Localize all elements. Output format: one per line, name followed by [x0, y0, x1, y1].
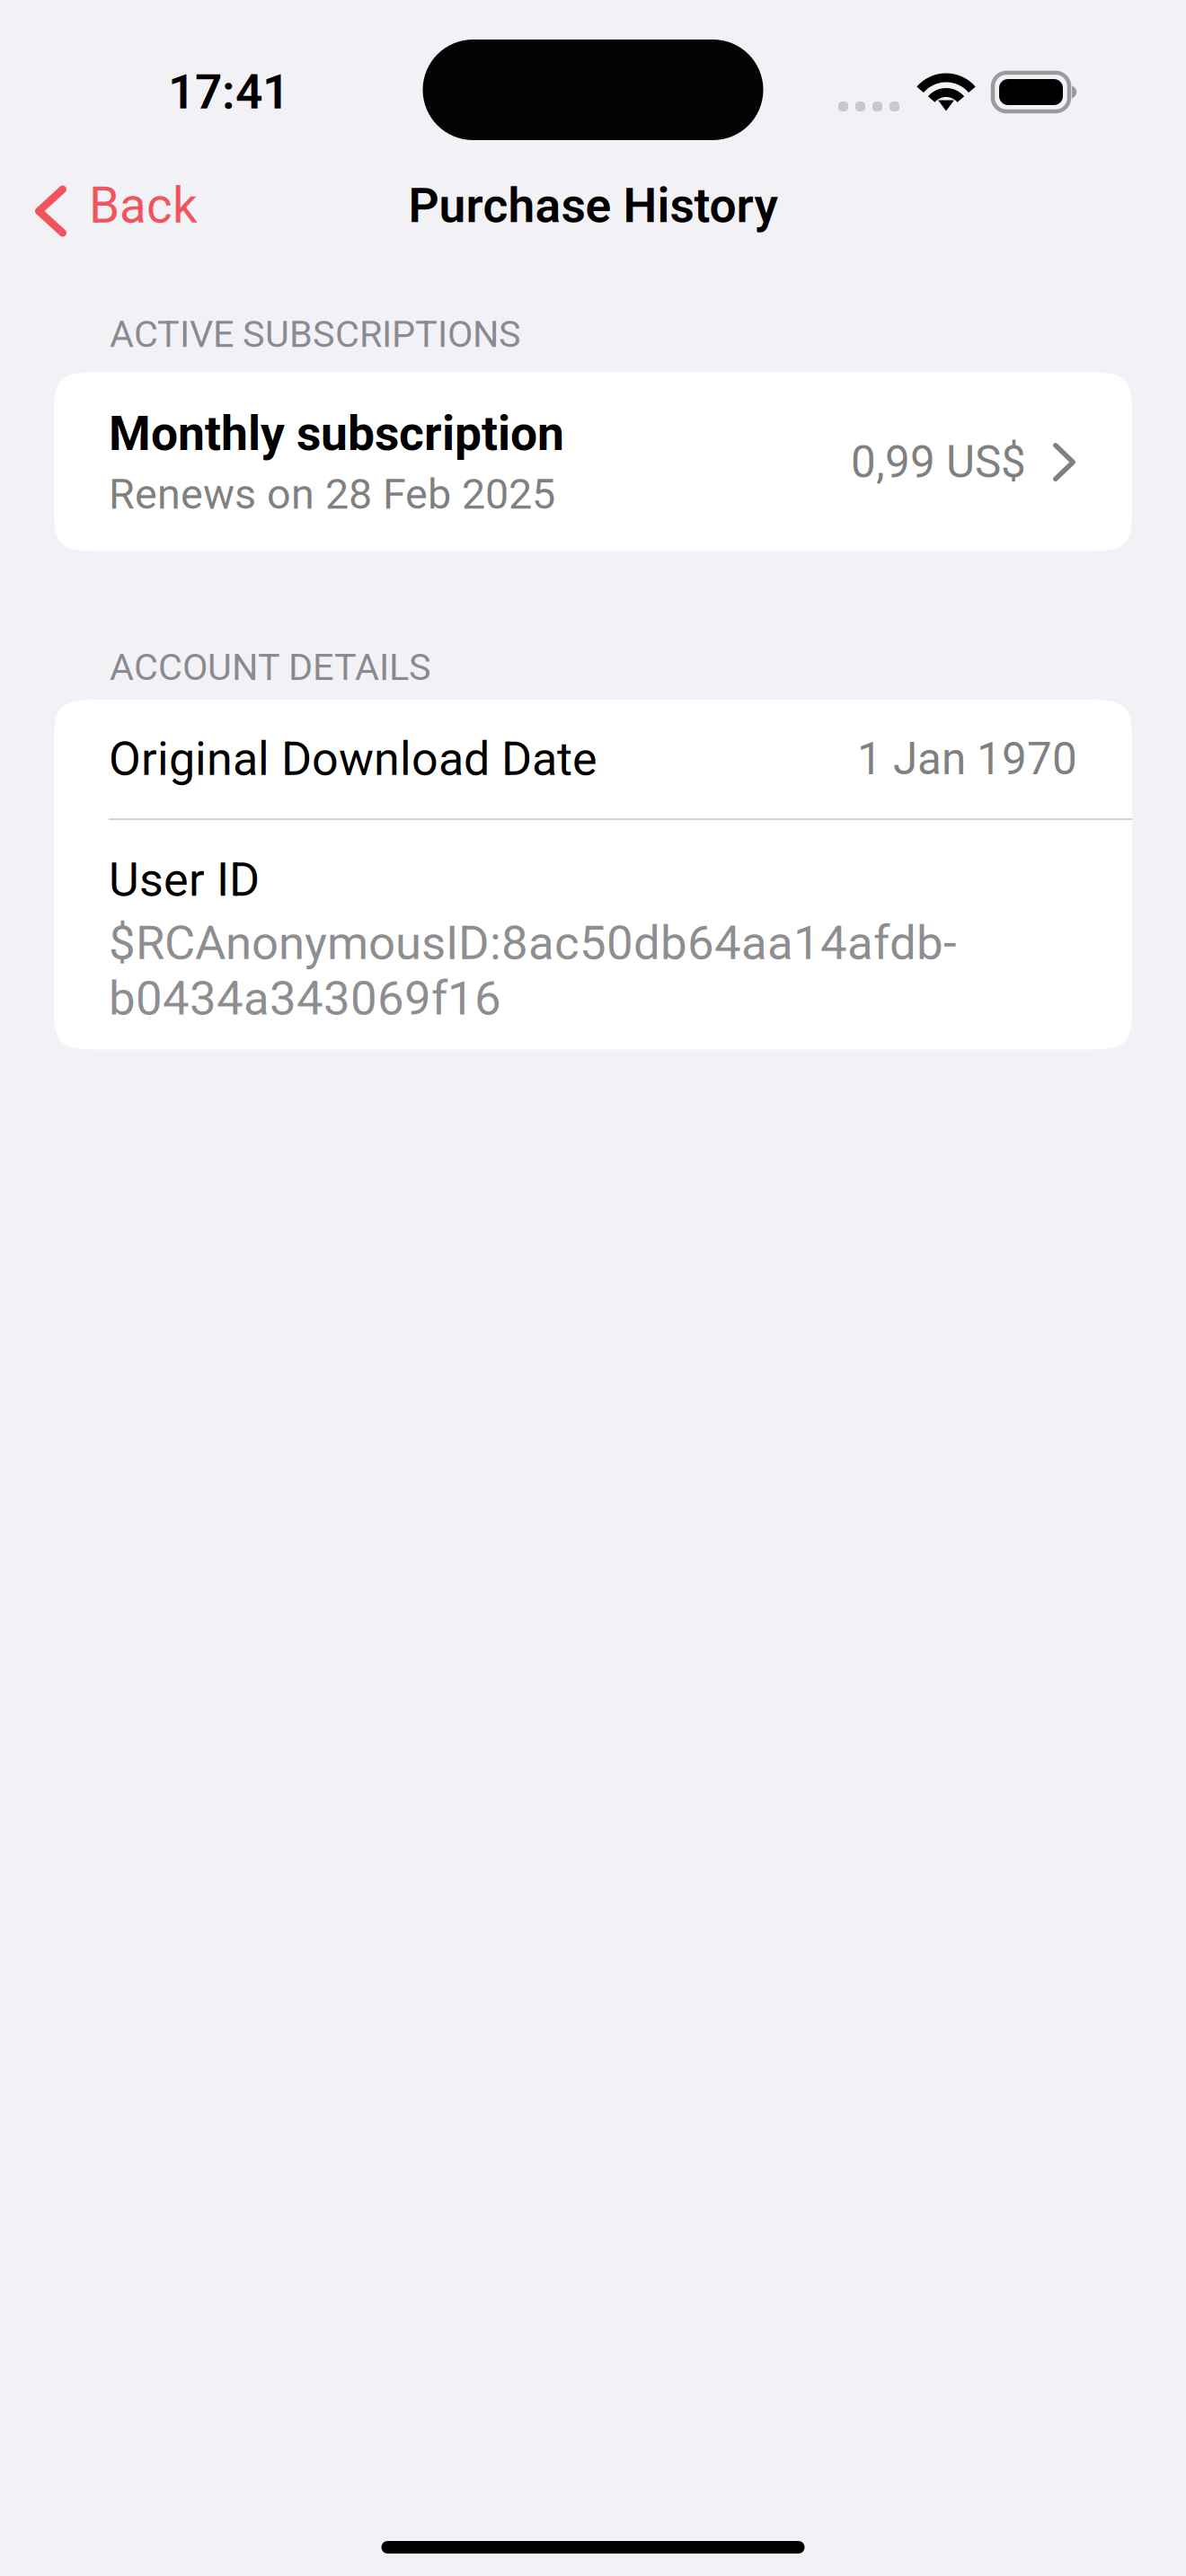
staticText: 1 Jan 1970	[857, 733, 1077, 785]
staticText: Original Download Date	[109, 732, 597, 786]
staticText: ACCOUNT DETAILS	[110, 645, 431, 689]
staticText: Monthly subscription	[109, 405, 564, 462]
staticText: Purchase History	[408, 178, 778, 234]
staticText: 0,99 US$	[851, 436, 1026, 488]
staticText: Back	[89, 177, 198, 235]
staticText: ACTIVE SUBSCRIPTIONS	[110, 313, 521, 356]
staticText: 17:41	[168, 64, 289, 120]
button[interactable]: Monthly subscription	[54, 372, 1132, 551]
staticText: User ID	[109, 852, 260, 907]
staticText: $RCAnonymousID:8ac50db64aa14afdb-b0434a3…	[109, 915, 957, 1026]
staticText: Renews on 28 Feb 2025	[109, 470, 555, 519]
button[interactable]: Back	[0, 159, 219, 256]
